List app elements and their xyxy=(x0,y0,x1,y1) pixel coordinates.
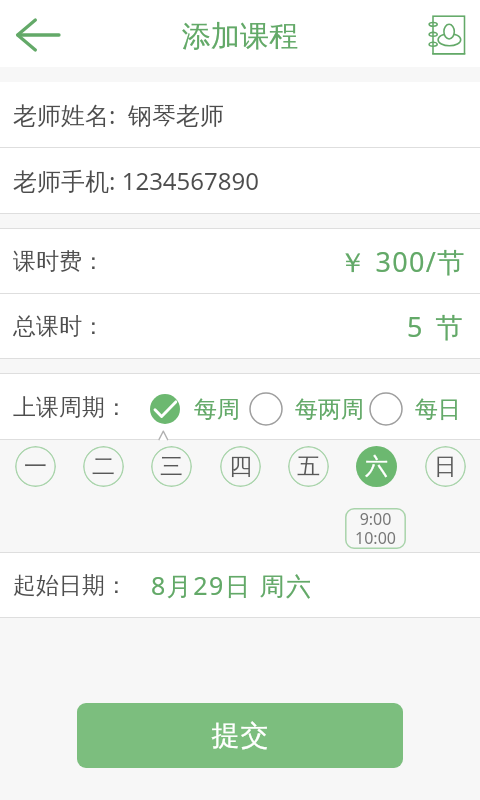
staticText: 老师姓名: 钢琴老师 xyxy=(13,98,224,131)
staticText: 一 xyxy=(24,452,47,481)
staticText: 五 xyxy=(297,452,320,481)
button[interactable]: 五 xyxy=(288,446,329,487)
staticText: 提交 xyxy=(211,718,269,753)
staticText: 日 xyxy=(434,452,457,481)
staticText: 添加课程 xyxy=(182,18,298,55)
staticText: 每两周 xyxy=(295,395,364,424)
staticText: 8月29日 周六 xyxy=(151,568,313,602)
button[interactable]: 日 xyxy=(425,446,466,487)
button[interactable]: 四 xyxy=(220,446,261,487)
staticText: 5 节 xyxy=(407,308,466,345)
button[interactable]: Contacts xyxy=(418,8,476,60)
button[interactable]: 六 xyxy=(356,446,397,487)
button[interactable]: 三 xyxy=(151,446,192,487)
button[interactable]: 9:00 10:00 xyxy=(345,508,406,549)
staticText: 课时费： xyxy=(13,247,105,276)
staticText: 老师手机: 1234567890 xyxy=(13,164,259,197)
button[interactable]: Back xyxy=(4,10,71,60)
staticText: 总课时： xyxy=(13,312,105,341)
button[interactable]: 一 xyxy=(15,446,56,487)
staticText: 每日 xyxy=(415,395,461,424)
button[interactable]: 每周 xyxy=(148,387,240,431)
staticText: 起始日期： xyxy=(13,571,128,600)
staticText: 9:00 10:00 xyxy=(355,508,396,549)
button[interactable]: 提交 xyxy=(77,703,403,768)
staticText: 六 xyxy=(365,452,388,481)
staticText: 三 xyxy=(160,452,183,481)
staticText: ￥ 300/节 xyxy=(339,243,466,280)
staticText: 四 xyxy=(229,452,252,481)
staticText: 二 xyxy=(92,452,115,481)
button[interactable]: 每两周 xyxy=(249,387,364,431)
button[interactable]: 每日 xyxy=(369,387,461,431)
staticText: 每周 xyxy=(194,395,240,424)
button[interactable]: 二 xyxy=(83,446,124,487)
staticText: 上课周期： xyxy=(13,393,128,422)
